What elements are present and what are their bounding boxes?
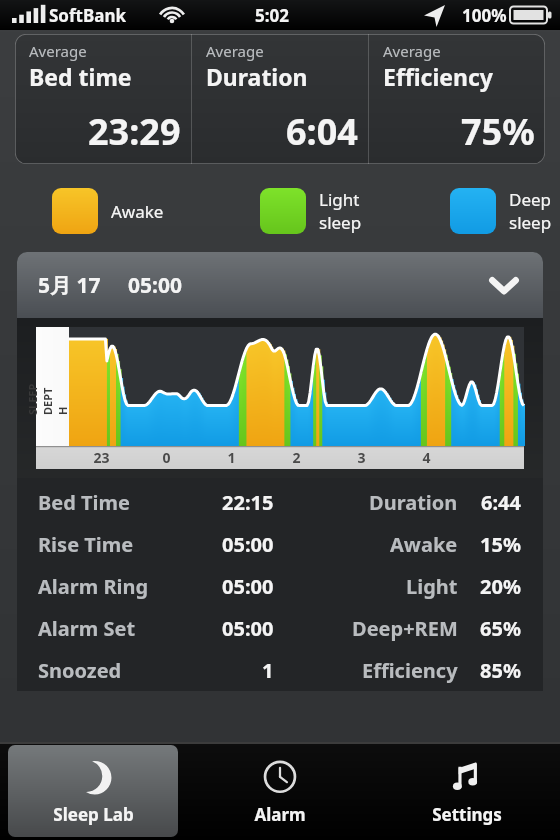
staticText: 1 — [227, 448, 236, 467]
staticText: Awake — [111, 200, 164, 223]
button[interactable]: Sleep Lab tab — [8, 745, 178, 837]
staticText: Bed time — [29, 61, 132, 92]
button[interactable]: Bed Time — [17, 481, 543, 523]
staticText: Alarm Set — [38, 615, 136, 642]
other: Expand night details — [491, 272, 517, 298]
staticText: Alarm Ring — [38, 573, 149, 600]
staticText: 05:00 — [128, 271, 182, 300]
staticText: 05:00 — [222, 615, 274, 642]
button[interactable]: Rise Time — [17, 523, 543, 565]
staticText: Deep+REM — [352, 615, 458, 642]
staticText: 2 — [292, 448, 301, 467]
staticText: 6:44 — [481, 489, 521, 516]
staticText: Rise Time — [38, 531, 134, 558]
staticText: Bed Time — [38, 489, 131, 516]
staticText: 6:04 — [286, 107, 358, 156]
button[interactable]: Average — [15, 34, 545, 164]
staticText: 3 — [357, 448, 366, 467]
staticText: 100% — [462, 4, 507, 27]
staticText: SLEEP DEPTH — [25, 382, 70, 415]
staticText: Light — [319, 188, 360, 211]
button[interactable]: Alarm Ring — [17, 565, 543, 607]
staticText: 5月 17 — [38, 271, 101, 300]
staticText: 22:15 — [222, 489, 274, 516]
staticText: Light — [406, 573, 458, 600]
button[interactable]: Alarm Set — [17, 607, 543, 649]
staticText: SoftBank — [49, 4, 127, 27]
button[interactable]: Snoozed — [17, 649, 543, 691]
staticText: 4 — [422, 448, 431, 467]
staticText: Sleep Lab — [53, 803, 134, 826]
staticText: sleep — [509, 211, 552, 234]
staticText: Efficiency — [383, 61, 493, 92]
button[interactable]: 5月 17 — [17, 252, 543, 318]
staticText: 05:00 — [222, 573, 274, 600]
staticText: Alarm — [254, 803, 306, 826]
staticText: Average — [29, 41, 87, 61]
staticText: 85% — [480, 657, 521, 684]
staticText: Average — [206, 41, 264, 61]
staticText: 20% — [480, 573, 521, 600]
staticText: Snoozed — [38, 657, 122, 684]
staticText: 65% — [480, 615, 521, 642]
staticText: Duration — [369, 489, 458, 516]
staticText: 5:02 — [255, 4, 289, 27]
staticText: Settings — [432, 803, 502, 826]
staticText: 0 — [162, 448, 171, 467]
staticText: Awake — [390, 531, 458, 558]
staticText: 75% — [461, 107, 535, 156]
staticText: Efficiency — [362, 657, 458, 684]
button[interactable]: Settings tab — [381, 745, 552, 837]
staticText: 15% — [480, 531, 521, 558]
staticText: 23:29 — [88, 107, 181, 156]
staticText: 05:00 — [222, 531, 274, 558]
staticText: 1 — [262, 657, 274, 684]
staticText: Duration — [206, 61, 308, 92]
staticText: Deep — [509, 188, 552, 211]
staticText: Average — [383, 41, 441, 61]
staticText: 23 — [93, 448, 110, 467]
staticText: sleep — [319, 211, 362, 234]
button[interactable]: Alarm tab — [194, 745, 365, 837]
